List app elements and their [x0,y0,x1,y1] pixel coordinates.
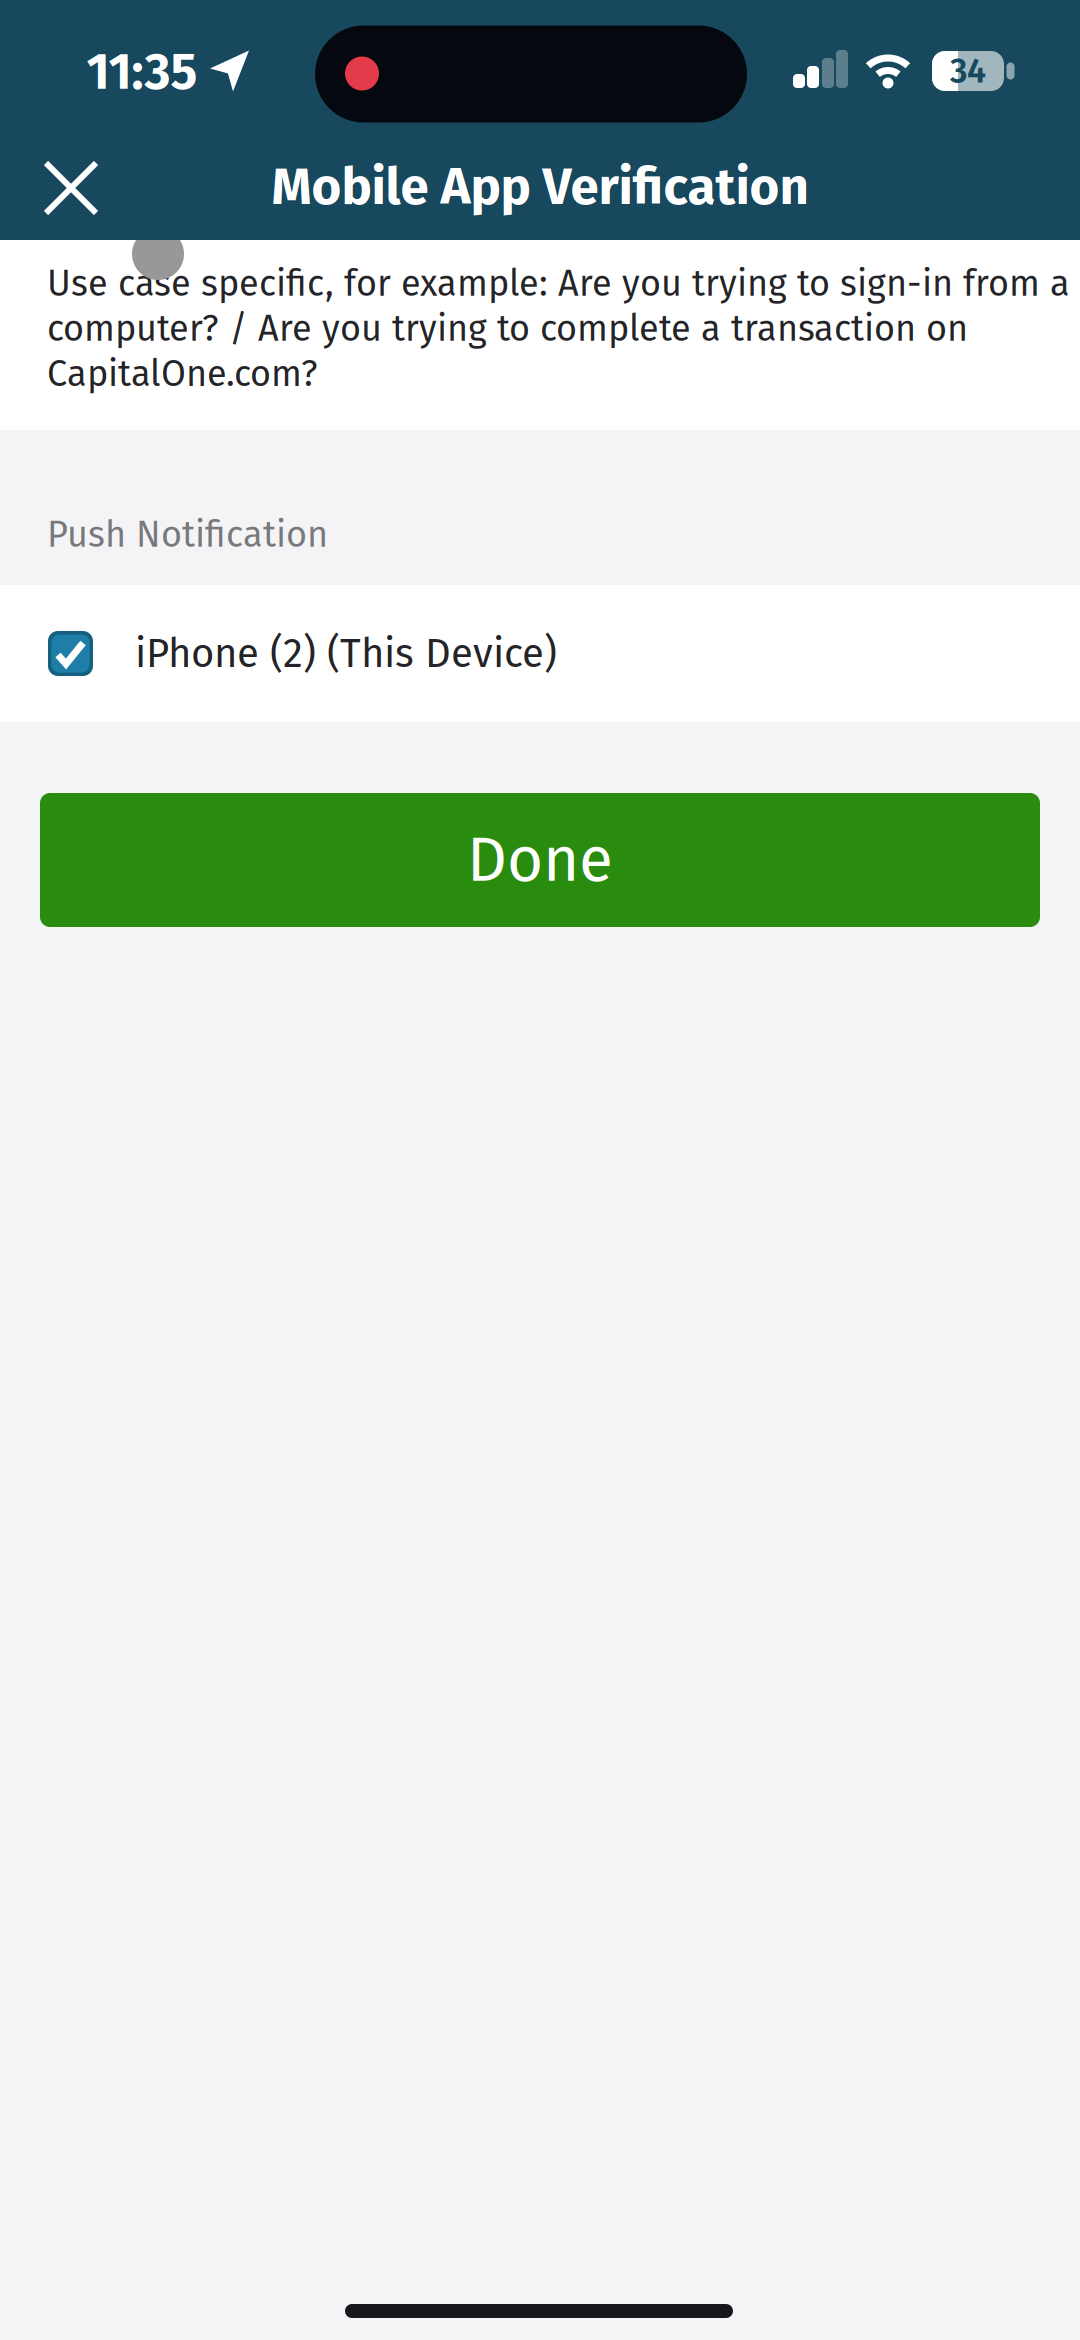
staticText: iPhone (2) (This Device) [135,629,557,677]
staticText: Done [467,823,613,897]
button[interactable]: iPhone (2) (This Device) [0,585,1080,722]
staticText: 11:35 [86,42,197,102]
button[interactable]: Done [40,793,1040,927]
button[interactable]: Close [26,143,116,233]
staticText: Push Notification [47,513,328,556]
staticText: Mobile App Verification [271,156,808,218]
staticText: 34 [950,51,986,91]
staticText: Use case specific, for example: Are you … [47,262,1070,396]
